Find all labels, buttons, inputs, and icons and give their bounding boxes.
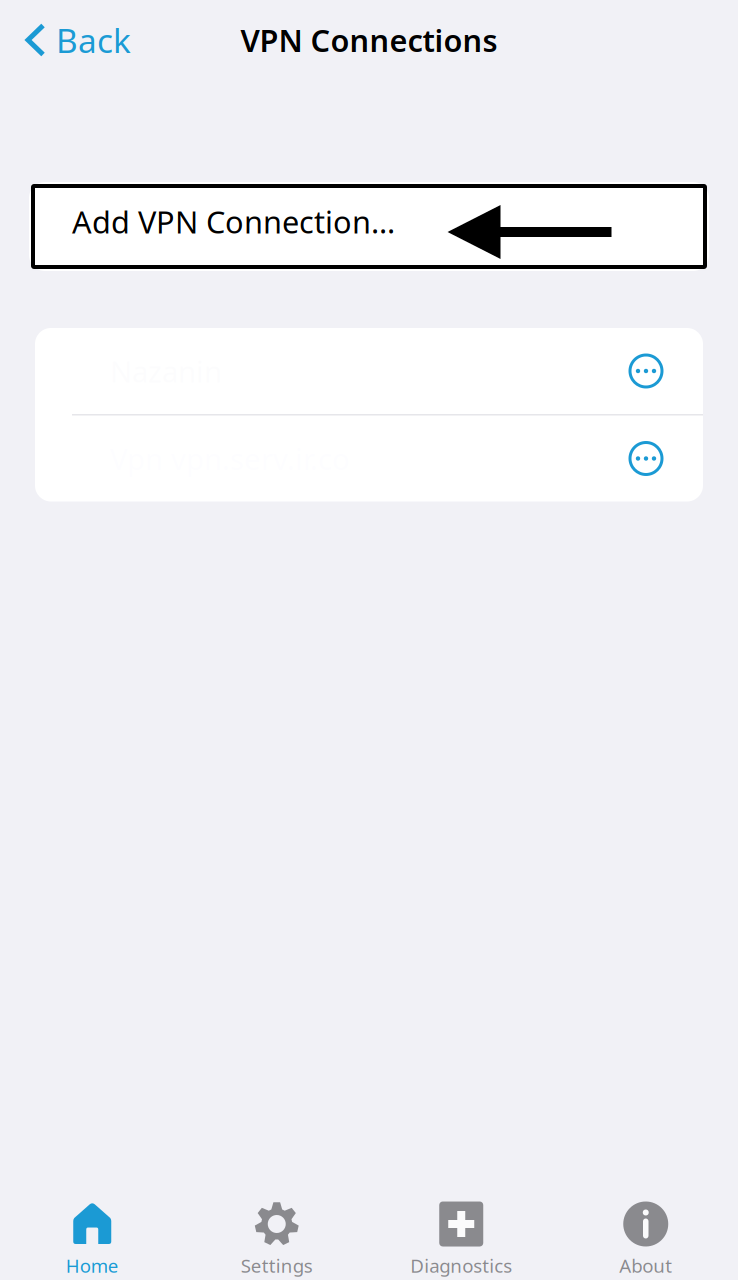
staticText: VPN Connections xyxy=(240,20,497,60)
button[interactable]: Vpn vpn.serv.ir.co xyxy=(35,415,703,501)
staticText: Diagnostics xyxy=(410,1253,512,1278)
staticText: Back xyxy=(56,18,131,62)
button[interactable]: Add VPN Connection... xyxy=(31,184,707,269)
button[interactable]: More options for Nazanin xyxy=(622,347,670,395)
button[interactable]: Home xyxy=(0,1186,184,1280)
button[interactable]: More options for Vpn vpn.serv.ir.co xyxy=(622,434,670,482)
staticText: Add VPN Connection... xyxy=(72,201,395,242)
button[interactable]: Back xyxy=(0,0,147,80)
button[interactable]: Diagnostics xyxy=(369,1186,553,1280)
staticText: Home xyxy=(66,1253,119,1278)
button[interactable]: Settings xyxy=(184,1186,369,1280)
button[interactable]: About xyxy=(553,1186,738,1280)
button[interactable]: Nazanin xyxy=(35,328,703,414)
staticText: Settings xyxy=(241,1253,313,1278)
staticText: About xyxy=(619,1253,672,1278)
